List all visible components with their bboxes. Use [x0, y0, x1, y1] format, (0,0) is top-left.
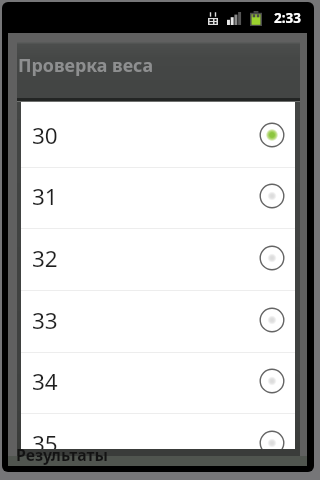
- staticText: 30: [32, 120, 58, 151]
- button[interactable]: 30: [21, 106, 295, 168]
- staticText: Результаты: [16, 444, 109, 466]
- button[interactable]: 33: [21, 291, 295, 353]
- button[interactable]: 32: [21, 229, 295, 291]
- button[interactable]: 31: [21, 167, 295, 229]
- staticText: 34: [32, 366, 58, 397]
- staticText: 35: [32, 428, 58, 449]
- button[interactable]: 34: [21, 352, 295, 414]
- button[interactable]: 35: [21, 414, 295, 449]
- staticText: 33: [32, 305, 58, 336]
- staticText: 2:33: [274, 9, 301, 27]
- staticText: 31: [32, 181, 58, 212]
- staticText: Проверка веса: [18, 53, 153, 77]
- staticText: 32: [32, 243, 58, 274]
